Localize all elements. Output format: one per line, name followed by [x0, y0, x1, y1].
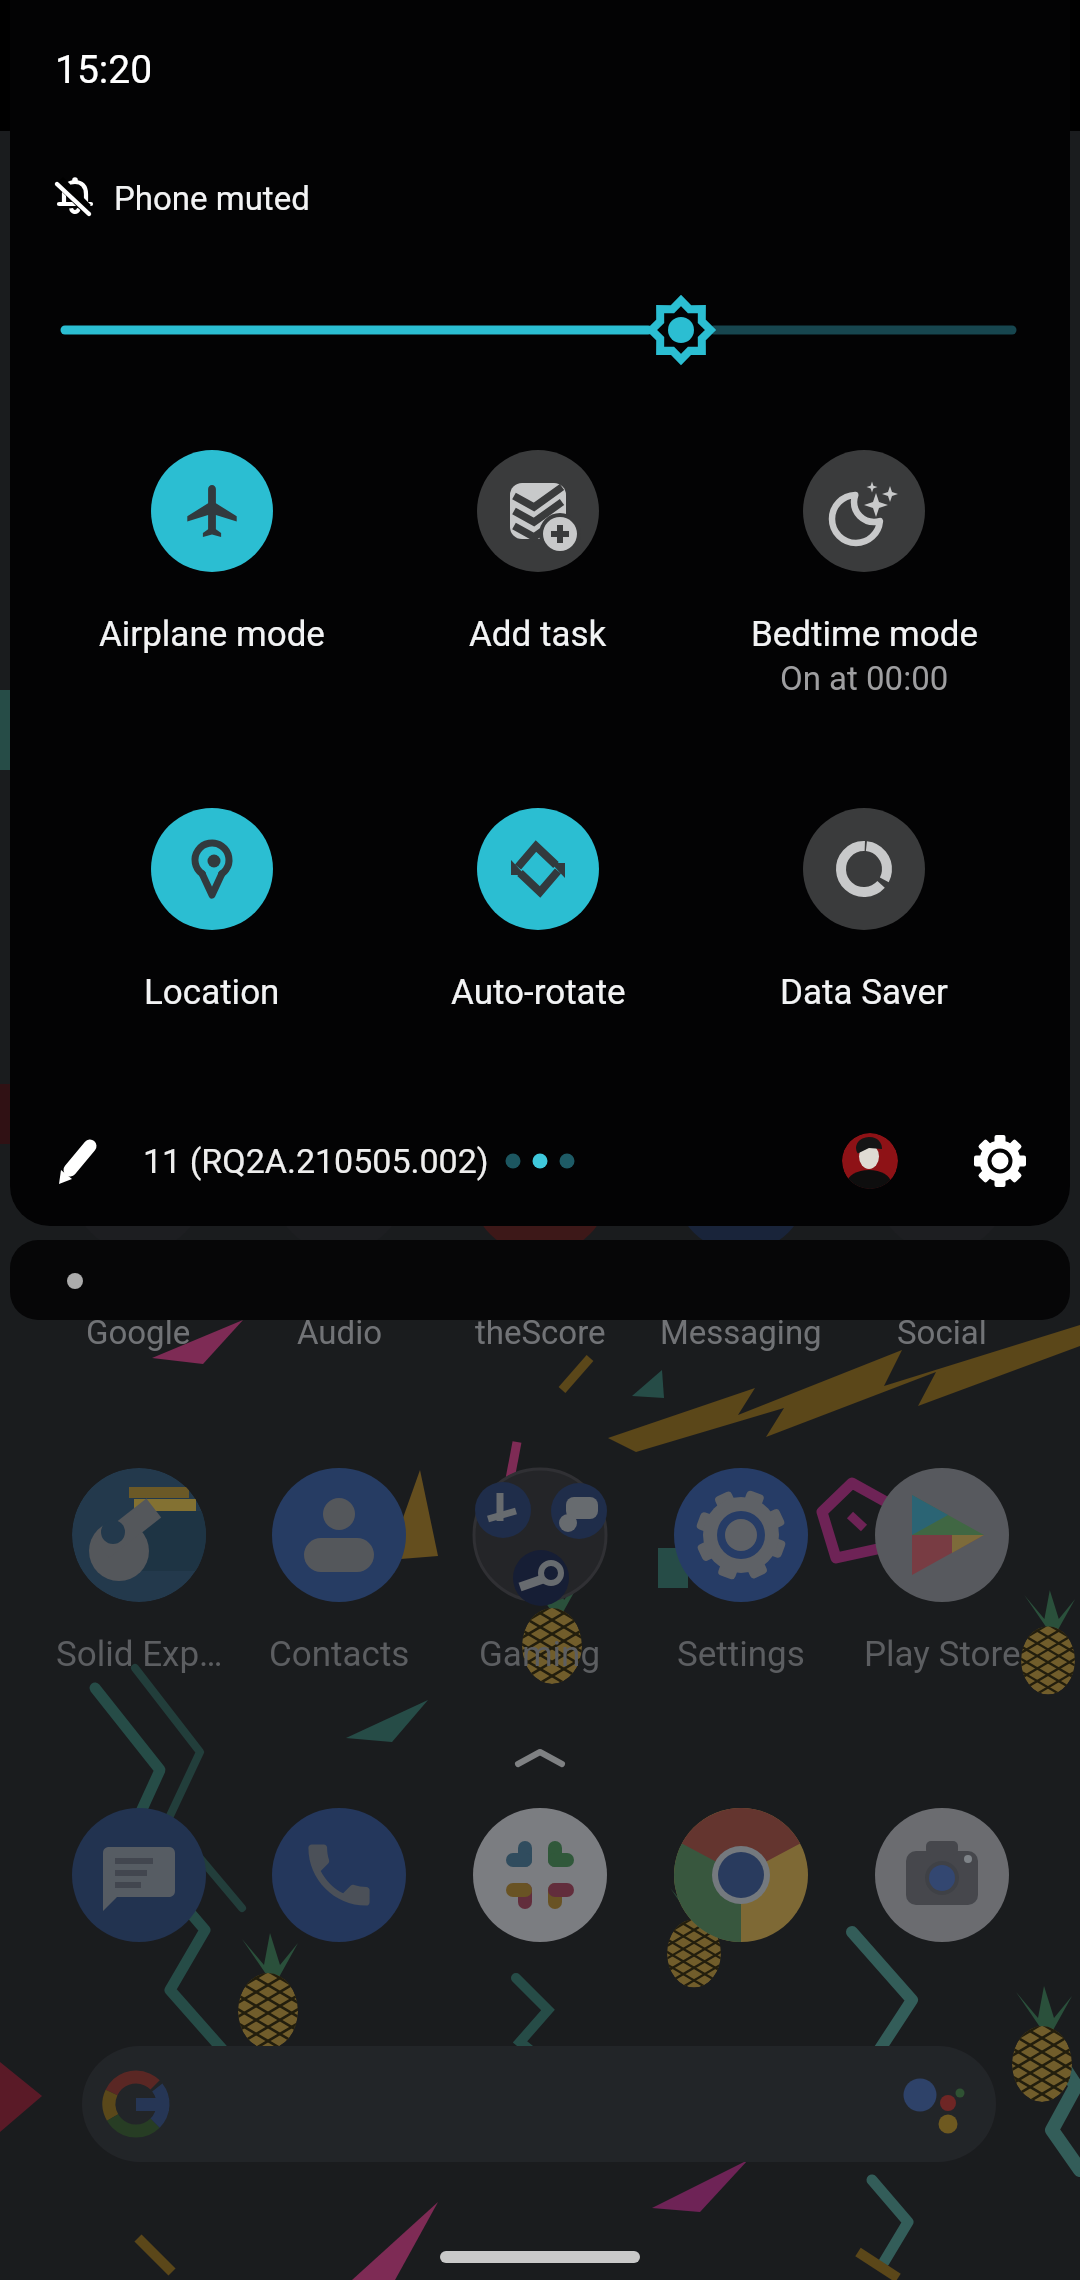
staticText: 11 (RQ2A.210505.002) [143, 1141, 489, 1181]
button[interactable] [272, 1808, 406, 1942]
button[interactable] [47, 1131, 107, 1191]
staticText: Airplane mode [99, 614, 325, 655]
button[interactable] [49, 450, 375, 710]
button[interactable] [10, 1240, 1070, 1320]
staticText: Gaming [479, 1634, 601, 1675]
button[interactable] [875, 1808, 1009, 1942]
staticText: Play Store [864, 1634, 1021, 1675]
staticText: Add task [469, 614, 607, 655]
button[interactable] [375, 808, 701, 1068]
button[interactable] [49, 808, 375, 1068]
button[interactable] [272, 1468, 406, 1602]
staticText: Google [86, 1313, 191, 1352]
staticText: Settings [677, 1634, 805, 1675]
button[interactable] [875, 1468, 1009, 1602]
button[interactable] [375, 450, 701, 710]
staticText: Auto-rotate [451, 972, 626, 1013]
button[interactable] [57, 174, 1057, 222]
staticText: Bedtime mode [751, 614, 978, 655]
staticText: Messaging [660, 1313, 822, 1352]
button[interactable] [701, 808, 1027, 1068]
button[interactable] [701, 450, 1027, 710]
staticText: Audio [297, 1313, 382, 1352]
button[interactable] [72, 1808, 206, 1942]
button[interactable] [972, 1133, 1028, 1189]
button[interactable] [674, 1468, 808, 1602]
staticText: On at 00:00 [780, 659, 949, 698]
button[interactable] [500, 1732, 580, 1782]
staticText: Solid Exp… [56, 1634, 223, 1675]
staticText: Data Saver [780, 972, 948, 1013]
button[interactable] [674, 1808, 808, 1942]
staticText: Location [144, 972, 280, 1013]
staticText: Phone muted [114, 179, 310, 218]
button[interactable] [473, 1468, 607, 1602]
button[interactable] [473, 1808, 607, 1942]
staticText: theScore [475, 1313, 606, 1352]
staticText: Social [897, 1313, 987, 1352]
button[interactable] [82, 2046, 996, 2162]
button[interactable] [842, 1133, 898, 1189]
staticText: 15:20 [55, 47, 153, 93]
button[interactable] [72, 1468, 206, 1602]
staticText: Contacts [269, 1634, 410, 1675]
button[interactable] [45, 300, 1035, 360]
